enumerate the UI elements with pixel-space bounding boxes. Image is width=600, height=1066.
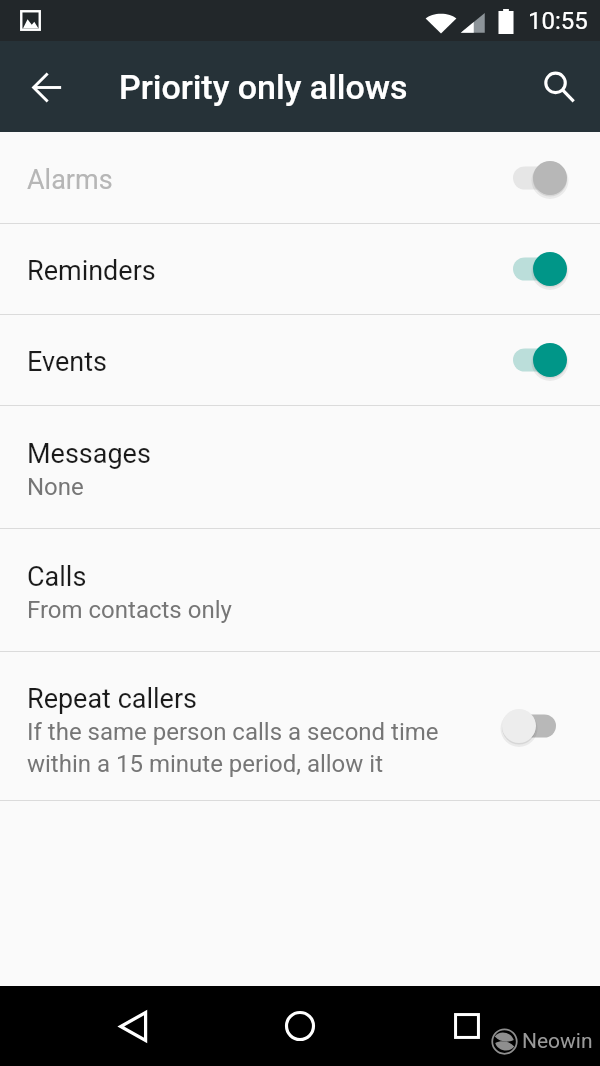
button[interactable]: Alarms [0,132,600,223]
button[interactable]: Repeat callers [0,652,600,800]
button[interactable]: Search [531,59,587,115]
staticText: Messages [27,438,151,470]
button[interactable]: Reminders [0,224,600,314]
button[interactable]: Recent apps [439,998,495,1054]
button[interactable]: Calls [0,529,600,651]
staticText: Reminders [27,255,506,287]
staticText: Events [27,346,506,378]
button[interactable]: Home [272,998,328,1054]
button[interactable]: Navigate up [19,59,75,115]
staticText: From contacts only [27,596,232,624]
staticText: Repeat callers [27,683,198,715]
staticText: None [27,473,84,501]
staticText: Calls [27,561,87,593]
staticText: If the same person calls a second time w… [27,718,439,777]
staticText: Alarms [27,164,506,196]
other: Screenshot [20,10,41,31]
button[interactable]: Back [105,998,161,1054]
button[interactable]: Messages [0,406,600,528]
button[interactable]: Events [0,315,600,405]
staticText: Priority only allows [119,67,408,107]
staticText: 10:55 [528,7,588,35]
staticText: Neowin [522,1029,593,1054]
